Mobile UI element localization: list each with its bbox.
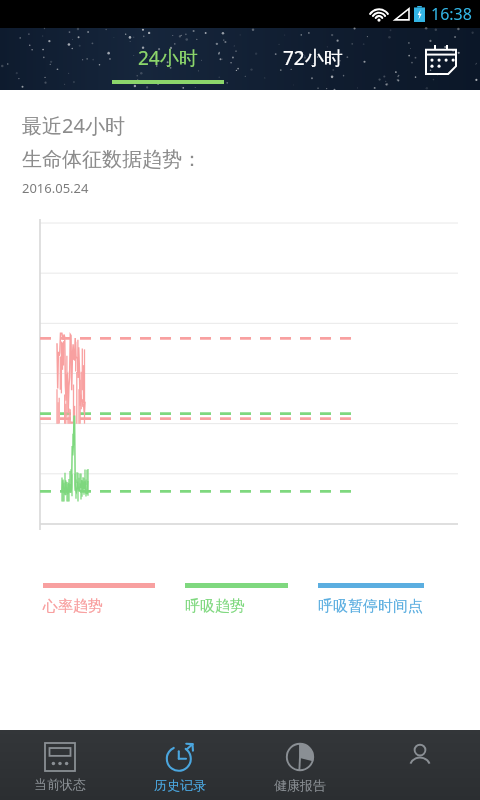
staticText: 当前状态 (34, 776, 86, 792)
staticText: 呼吸趋势 (185, 597, 245, 616)
staticText: 历史记录 (154, 777, 206, 793)
staticText: 72小时 (283, 45, 343, 71)
staticText: 心率趋势 (43, 597, 103, 616)
button[interactable]: 72小时 (255, 28, 370, 90)
staticText: 健康报告 (274, 777, 326, 793)
button[interactable]: 选择日期 (418, 36, 464, 82)
button[interactable]: 当前状态 (0, 730, 120, 800)
button[interactable]: 历史记录 (120, 730, 240, 800)
staticText: 呼吸暂停时间点 (318, 597, 423, 616)
button[interactable]: 个人中心 (360, 730, 480, 800)
staticText: 2016.05.24 (22, 179, 89, 197)
staticText: 生命体征数据趋势： (22, 147, 202, 172)
button[interactable]: 心率趋势 (43, 583, 155, 616)
button[interactable]: 24小时 (110, 28, 225, 90)
staticText: 24小时 (138, 45, 198, 71)
button[interactable]: 呼吸趋势 (185, 583, 288, 616)
staticText: 16:38 (431, 3, 472, 25)
button[interactable]: 健康报告 (240, 730, 360, 800)
button[interactable]: 呼吸暂停时间点 (318, 583, 424, 616)
staticText: 最近24小时 (22, 112, 125, 139)
